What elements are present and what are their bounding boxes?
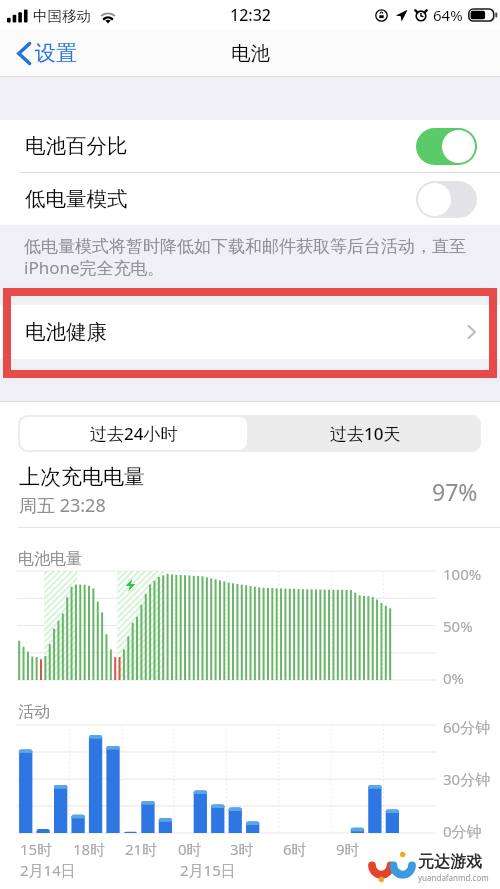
staticText: 15时 xyxy=(20,839,53,859)
staticText: 6时 xyxy=(283,839,307,859)
staticText: 3时 xyxy=(230,839,254,859)
other: Battery xyxy=(468,8,498,22)
staticText: 电池健康 xyxy=(25,319,107,345)
staticText: 0时 xyxy=(178,839,202,859)
staticText: yuandafanmd.com xyxy=(418,872,489,883)
staticText: 100% xyxy=(443,564,482,584)
staticText: 电池 xyxy=(231,41,270,66)
staticText: 50% xyxy=(443,616,473,636)
staticText: 0% xyxy=(443,668,465,688)
button[interactable]: Off xyxy=(416,181,477,218)
staticText: 30分钟 xyxy=(443,769,491,789)
staticText: 低电量模式将暂时降低如下载和邮件获取等后台活动，直至 xyxy=(24,236,466,257)
button[interactable]: 低电量模式 xyxy=(0,173,500,225)
button[interactable]: 电池健康 xyxy=(0,305,500,359)
button[interactable]: 电池百分比 xyxy=(0,120,500,172)
staticText: iPhone完全充电。 xyxy=(24,256,165,279)
staticText: 60分钟 xyxy=(443,717,491,737)
staticText: 过去10天 xyxy=(330,422,401,445)
button[interactable]: 过去24小时 xyxy=(20,417,247,450)
staticText: 设置 xyxy=(35,40,77,66)
other: Location xyxy=(395,9,408,22)
staticText: 21时 xyxy=(125,839,158,859)
staticText: 2月14日 xyxy=(20,860,76,880)
staticText: 12:32 xyxy=(230,4,271,26)
staticText: 电池电量 xyxy=(18,549,82,569)
other: Rotation lock xyxy=(375,9,388,22)
staticText: 元达游戏 xyxy=(418,852,482,872)
button[interactable]: On xyxy=(416,128,477,165)
staticText: 97% xyxy=(432,476,478,507)
staticText: 周五 23:28 xyxy=(19,493,106,518)
staticText: 64% xyxy=(433,5,463,25)
staticText: 活动 xyxy=(18,702,50,722)
button[interactable]: 设置 xyxy=(0,35,89,71)
staticText: 中国移动 xyxy=(33,7,91,25)
staticText: 9时 xyxy=(336,839,360,859)
staticText: 上次充电电量 xyxy=(19,464,145,490)
button[interactable]: 过去10天 xyxy=(249,415,481,452)
staticText: 2月15日 xyxy=(180,860,236,880)
staticText: 低电量模式 xyxy=(25,186,128,212)
other: Alarm xyxy=(415,9,427,21)
staticText: 电池百分比 xyxy=(25,133,128,159)
staticText: 18时 xyxy=(73,839,106,859)
staticText: 过去24小时 xyxy=(90,422,178,445)
staticText: 0分钟 xyxy=(443,821,482,841)
